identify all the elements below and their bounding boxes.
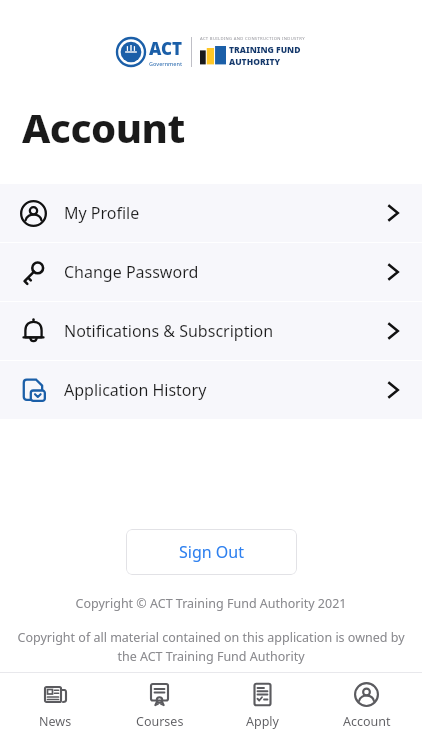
staticText: Application History: [64, 379, 207, 401]
staticText: News: [39, 713, 72, 730]
staticText: Copyright © ACT Training Fund Authority …: [0, 595, 422, 612]
staticText: TRAINING FUND: [229, 44, 301, 56]
other: ACT Government: [117, 38, 145, 66]
button[interactable]: Notifications & Subscription: [0, 302, 422, 360]
staticText: AUTHORITY: [229, 56, 281, 68]
staticText: Account: [343, 713, 391, 730]
staticText: ACT: [149, 37, 183, 60]
other: Account: [354, 682, 379, 707]
button[interactable]: Courses: [112, 673, 207, 750]
button[interactable]: My Profile: [0, 184, 422, 242]
staticText: ACT BUILDING AND CONSTRUCTION INDUSTRY: [200, 36, 305, 42]
button[interactable]: Sign Out: [126, 529, 297, 575]
button[interactable]: News: [8, 673, 103, 750]
staticText: Copyright of all material contained on t…: [10, 629, 412, 665]
other: Apply: [250, 682, 275, 707]
button[interactable]: Application History: [0, 361, 422, 419]
staticText: Apply: [246, 713, 279, 730]
button[interactable]: Apply: [215, 673, 310, 750]
staticText: Sign Out: [179, 541, 244, 563]
staticText: Account: [22, 100, 185, 154]
button[interactable]: Change Password: [0, 243, 422, 301]
staticText: Courses: [136, 713, 184, 730]
button[interactable]: Account: [319, 673, 414, 750]
other: Courses: [147, 682, 172, 707]
staticText: Notifications & Subscription: [64, 320, 274, 342]
other: News: [43, 682, 68, 707]
staticText: My Profile: [64, 202, 140, 224]
staticText: Change Password: [64, 261, 199, 283]
staticText: Government: [149, 60, 183, 67]
